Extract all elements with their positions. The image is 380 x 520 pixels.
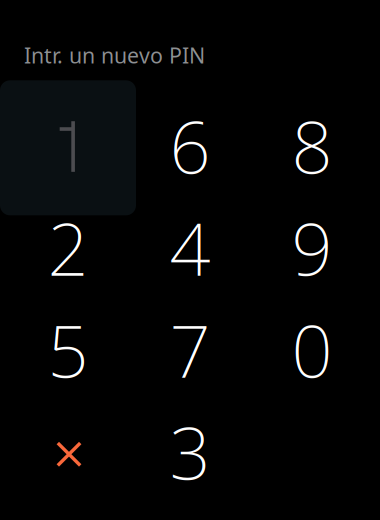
staticText: Intr. un nuevo PIN — [24, 41, 205, 69]
staticText: 5 — [47, 302, 88, 398]
staticText: 9 — [291, 200, 332, 296]
button[interactable]: 7 — [129, 299, 251, 401]
button[interactable]: 0 — [251, 299, 373, 401]
staticText: 2 — [47, 200, 88, 296]
button[interactable]: 8 — [251, 95, 373, 197]
staticText: 8 — [291, 98, 332, 194]
button[interactable]: 6 — [129, 95, 251, 197]
button[interactable]: Delete — [7, 401, 129, 503]
staticText: 7 — [169, 302, 210, 398]
button[interactable]: 4 — [129, 197, 251, 299]
button[interactable]: 2 — [7, 197, 129, 299]
button[interactable]: 3 — [129, 401, 251, 503]
button[interactable]: 9 — [251, 197, 373, 299]
staticText: 6 — [169, 98, 210, 194]
button[interactable]: 1 — [7, 95, 129, 197]
staticText: 0 — [291, 302, 332, 398]
button[interactable]: 5 — [7, 299, 129, 401]
staticText: 4 — [169, 200, 210, 296]
staticText: 3 — [169, 404, 210, 500]
